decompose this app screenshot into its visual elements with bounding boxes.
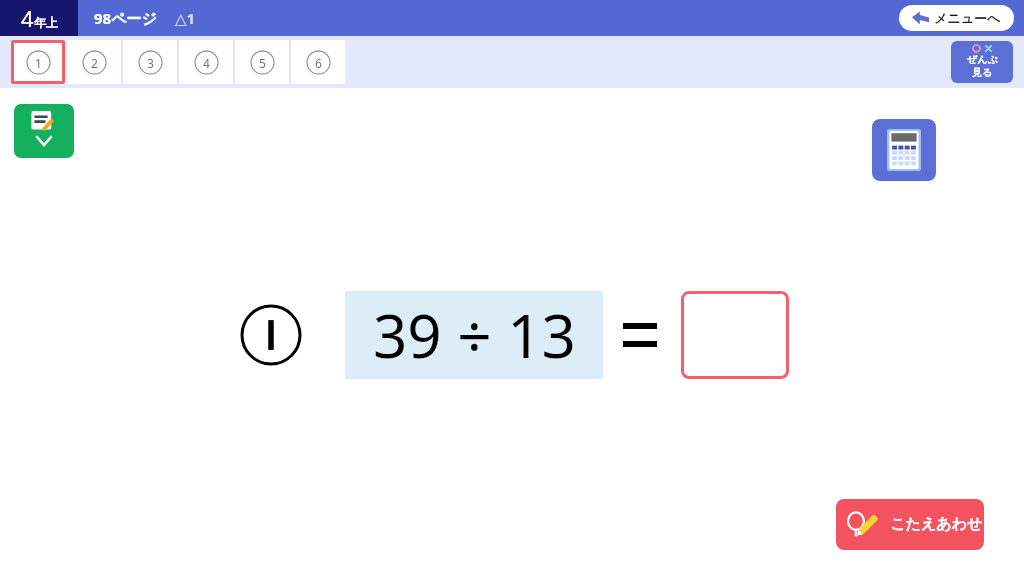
- staticText: 年上: [34, 15, 58, 30]
- staticText: △1: [175, 8, 196, 28]
- button[interactable]: 3: [123, 40, 177, 84]
- button[interactable]: 電卓: [872, 119, 936, 181]
- staticText: メニューへ: [934, 10, 1001, 26]
- staticText: 4: [203, 55, 210, 71]
- button[interactable]: ぜんぶ: [951, 41, 1013, 83]
- button[interactable]: 5: [235, 40, 289, 84]
- button[interactable]: メニューへ: [899, 5, 1014, 31]
- button[interactable]: こたえあわせ: [836, 499, 984, 550]
- button[interactable]: 6: [291, 40, 345, 84]
- staticText: 見る: [972, 66, 993, 79]
- staticText: 4: [21, 3, 34, 33]
- button[interactable]: 4: [179, 40, 233, 84]
- button[interactable]: 1: [11, 40, 65, 84]
- staticText: 1: [35, 55, 42, 71]
- staticText: こたえあわせ: [890, 515, 983, 534]
- staticText: 98ページ: [94, 8, 157, 28]
- button[interactable]: 2: [67, 40, 121, 84]
- staticText: 3: [147, 55, 154, 71]
- staticText: 39 ÷ 13: [373, 294, 576, 376]
- staticText: 6: [315, 55, 322, 71]
- staticText: ぜんぶ: [967, 53, 998, 66]
- staticText: 5: [259, 55, 266, 71]
- button[interactable]: メモ: [14, 104, 74, 158]
- button[interactable]: [681, 291, 789, 379]
- staticText: 2: [91, 55, 98, 71]
